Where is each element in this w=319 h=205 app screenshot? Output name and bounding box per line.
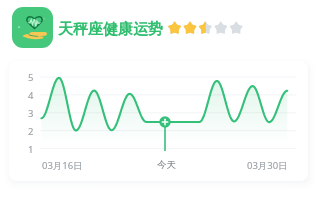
staticText: 天秤座健康运势 xyxy=(58,20,163,39)
staticText: 2 xyxy=(28,125,34,138)
staticText: 03月16日 xyxy=(42,159,83,172)
staticText: 3 xyxy=(28,107,34,120)
staticText: 03月30日 xyxy=(247,159,288,172)
staticText: 5 xyxy=(28,71,34,84)
button[interactable]: 评分 2.5 星 xyxy=(167,20,244,37)
staticText: 4 xyxy=(28,89,34,102)
staticText: 1 xyxy=(28,143,34,156)
button[interactable]: 健康运势 xyxy=(12,7,53,48)
staticText: 今天 xyxy=(157,159,176,171)
button[interactable]: 5 xyxy=(9,61,308,181)
